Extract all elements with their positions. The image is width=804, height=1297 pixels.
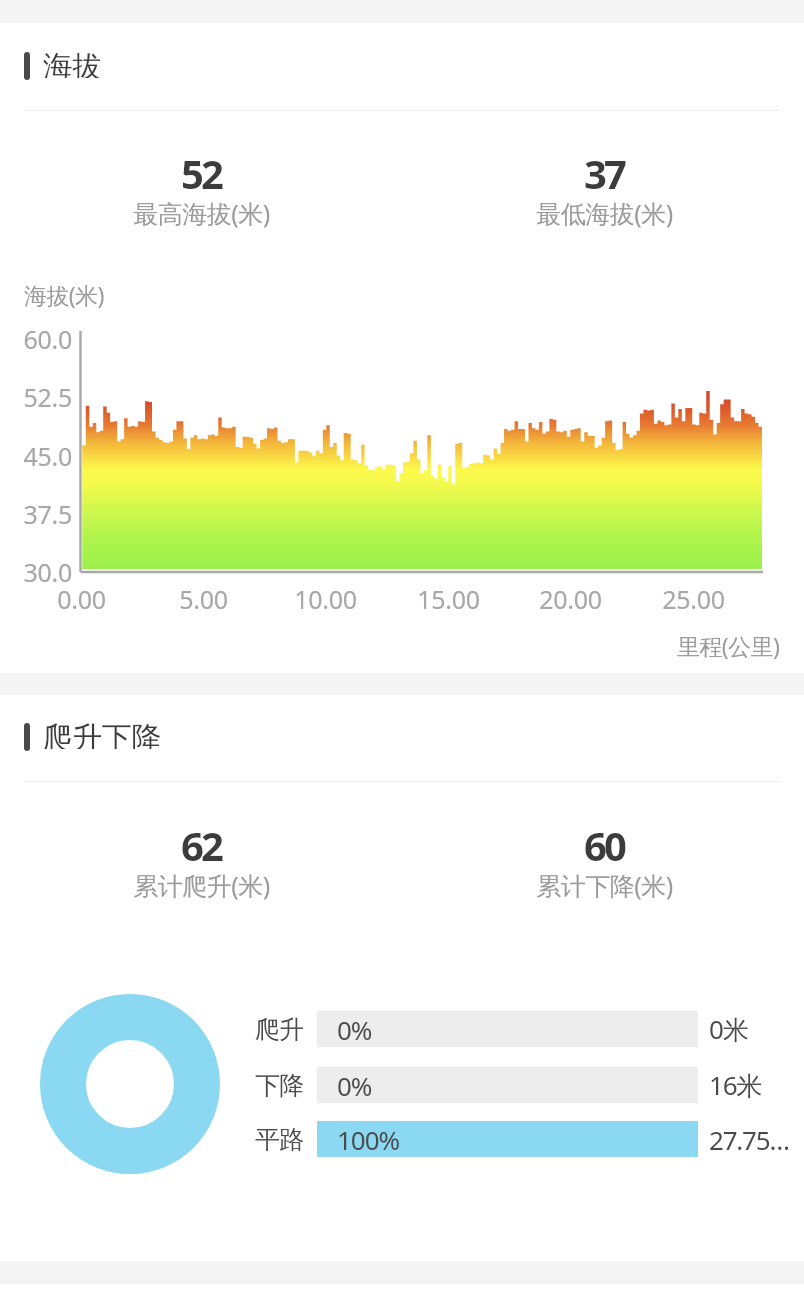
staticText: 平路 bbox=[255, 1124, 304, 1155]
staticText: 37 bbox=[584, 146, 624, 200]
staticText: 累计下降(米) bbox=[536, 868, 673, 902]
button[interactable]: 62 bbox=[31, 818, 371, 906]
staticText: 0% bbox=[337, 1012, 372, 1047]
staticText: 海拔 bbox=[43, 48, 102, 78]
staticText: 下降 bbox=[255, 1070, 304, 1101]
staticText: 52 bbox=[181, 146, 221, 200]
staticText: 最低海拔(米) bbox=[536, 196, 673, 230]
staticText: 里程(公里) bbox=[677, 630, 780, 661]
button[interactable]: 52 bbox=[31, 146, 371, 234]
button[interactable]: 爬升 bbox=[255, 1011, 804, 1047]
button[interactable]: 海拔 bbox=[24, 51, 102, 81]
staticText: 累计爬升(米) bbox=[133, 868, 270, 902]
staticText: 16米 bbox=[709, 1067, 762, 1103]
staticText: 0.00 bbox=[57, 582, 106, 616]
staticText: 52.5 bbox=[23, 380, 72, 414]
staticText: 最高海拔(米) bbox=[133, 196, 270, 230]
staticText: 20.00 bbox=[539, 582, 602, 616]
staticText: 10.00 bbox=[294, 582, 357, 616]
staticText: 60 bbox=[584, 818, 624, 872]
staticText: 100% bbox=[337, 1122, 400, 1157]
button[interactable]: 下降 bbox=[255, 1067, 804, 1103]
staticText: 5.00 bbox=[179, 582, 228, 616]
staticText: 0米 bbox=[709, 1011, 748, 1047]
button[interactable]: 37 bbox=[434, 146, 774, 234]
staticText: 15.00 bbox=[417, 582, 480, 616]
staticText: 30.0 bbox=[23, 555, 72, 589]
button[interactable]: 60 bbox=[434, 818, 774, 906]
staticText: 海拔(米) bbox=[24, 279, 104, 310]
staticText: 27.75… bbox=[709, 1122, 789, 1157]
staticText: 0% bbox=[337, 1068, 372, 1103]
staticText: 45.0 bbox=[23, 439, 72, 473]
button[interactable]: 平路 bbox=[255, 1121, 804, 1157]
staticText: 62 bbox=[181, 818, 221, 872]
staticText: 爬升下降 bbox=[43, 719, 161, 749]
staticText: 37.5 bbox=[23, 497, 72, 531]
staticText: 爬升 bbox=[255, 1014, 304, 1045]
staticText: 60.0 bbox=[23, 322, 72, 356]
button[interactable]: 爬升下降 bbox=[24, 722, 161, 752]
staticText: 25.00 bbox=[662, 582, 725, 616]
